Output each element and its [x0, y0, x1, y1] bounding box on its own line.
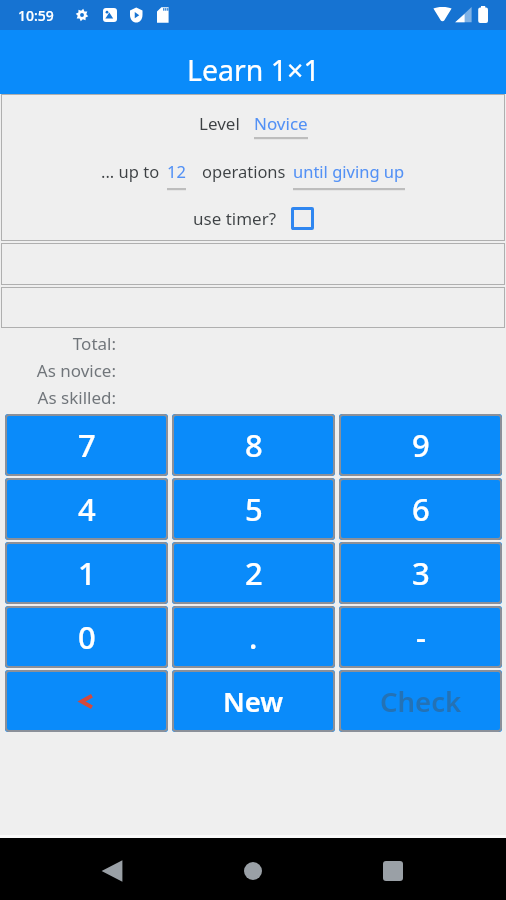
- other: Backspace: [80, 695, 93, 708]
- staticText: ... up to: [101, 160, 160, 182]
- staticText: Level: [199, 112, 240, 135]
- button[interactable]: New: [172, 670, 335, 732]
- button[interactable]: Recents: [369, 840, 417, 900]
- button[interactable]: until giving up: [293, 160, 405, 182]
- button[interactable]: 8: [172, 414, 335, 476]
- button[interactable]: .: [172, 606, 335, 668]
- staticText: operations: [202, 160, 286, 182]
- staticText: As novice:: [0, 359, 116, 382]
- staticText: until giving up: [293, 160, 405, 182]
- staticText: 12: [167, 160, 186, 182]
- staticText: 2: [245, 552, 263, 594]
- staticText: New: [223, 683, 284, 720]
- staticText: 7: [78, 424, 96, 466]
- button[interactable]: 1: [5, 542, 168, 604]
- button[interactable]: -: [339, 606, 502, 668]
- staticText: -: [416, 616, 426, 658]
- staticText: As skilled:: [0, 386, 116, 409]
- staticText: 10:59: [18, 6, 54, 25]
- button[interactable]: use timer: [291, 207, 314, 230]
- button[interactable]: 7: [5, 414, 168, 476]
- button[interactable]: 5: [172, 478, 335, 540]
- button[interactable]: 6: [339, 478, 502, 540]
- staticText: 1: [78, 552, 96, 594]
- staticText: 5: [245, 488, 263, 530]
- button[interactable]: 4: [5, 478, 168, 540]
- staticText: Check: [380, 683, 462, 720]
- button[interactable]: 0: [5, 606, 168, 668]
- staticText: Total:: [0, 332, 116, 355]
- staticText: Novice: [254, 112, 308, 135]
- staticText: 8: [245, 424, 263, 466]
- button[interactable]: 12: [167, 160, 186, 182]
- button[interactable]: 9: [339, 414, 502, 476]
- staticText: 6: [412, 488, 430, 530]
- button[interactable]: 2: [172, 542, 335, 604]
- staticText: 9: [412, 424, 430, 466]
- button[interactable]: Check: [339, 670, 502, 732]
- staticText: use timer?: [193, 207, 277, 230]
- staticText: 4: [78, 488, 96, 530]
- staticText: .: [249, 616, 258, 658]
- staticText: Learn 1×1: [187, 51, 320, 90]
- button[interactable]: Backspace: [5, 670, 168, 732]
- button[interactable]: Back: [88, 840, 136, 900]
- staticText: 0: [78, 616, 96, 658]
- button[interactable]: 3: [339, 542, 502, 604]
- button[interactable]: Novice: [254, 112, 308, 135]
- button[interactable]: Home: [229, 840, 277, 900]
- staticText: 3: [412, 552, 430, 594]
